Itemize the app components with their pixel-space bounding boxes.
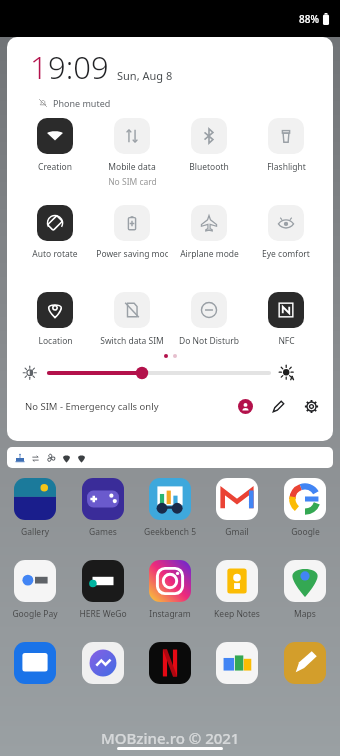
staticText: 88%: [299, 12, 319, 26]
staticText: Eye comfort: [262, 248, 310, 260]
button[interactable]: Power saving mode: [96, 205, 168, 260]
button[interactable]: [205, 642, 269, 684]
button[interactable]: No SIM - Emergency calls only: [25, 400, 159, 413]
button[interactable]: Mobile data: [96, 118, 168, 188]
staticText: Airplane mode: [180, 248, 239, 260]
button[interactable]: Geekbench 5: [138, 478, 202, 538]
button[interactable]: Do Not Disturb: [173, 292, 245, 347]
button[interactable]: Location: [19, 292, 91, 347]
staticText: Power saving mode: [96, 248, 168, 260]
staticText: Geekbench 5: [144, 526, 196, 538]
staticText: Auto rotate: [32, 248, 78, 260]
button[interactable]: [273, 642, 337, 684]
button[interactable]: Edit: [271, 399, 286, 414]
button[interactable]: [47, 365, 271, 381]
staticText: No SIM card: [108, 176, 157, 188]
staticText: MOBzine.ro © 2021: [101, 728, 240, 748]
button[interactable]: HERE WeGo: [71, 560, 135, 620]
button[interactable]: Phone muted: [30, 94, 119, 112]
staticText: Sun, Aug 8: [117, 68, 173, 83]
button[interactable]: Instagram: [138, 560, 202, 620]
staticText: Bluetooth: [189, 161, 229, 173]
button[interactable]: Gmail: [205, 478, 269, 538]
button[interactable]: [138, 642, 202, 684]
staticText: Do Not Disturb: [179, 335, 239, 347]
button[interactable]: Settings: [304, 399, 319, 414]
staticText: NFC: [278, 335, 295, 347]
staticText: Gallery: [21, 526, 49, 538]
staticText: Mobile data: [108, 161, 156, 173]
button[interactable]: Airplane mode: [173, 205, 245, 260]
button[interactable]: Bluetooth: [173, 118, 245, 173]
button[interactable]: Low brightness: [23, 366, 38, 381]
button[interactable]: Keep Notes: [205, 560, 269, 620]
staticText: Instagram: [149, 608, 191, 620]
staticText: Google Pay: [12, 608, 58, 620]
staticText: 9:09: [48, 46, 109, 88]
button[interactable]: NFC: [250, 292, 322, 347]
button[interactable]: Google: [273, 478, 337, 538]
button[interactable]: Creation: [19, 118, 91, 173]
staticText: 1: [30, 46, 48, 88]
staticText: Creation: [38, 161, 72, 173]
button[interactable]: Eye comfort: [250, 205, 322, 260]
staticText: Location: [38, 335, 73, 347]
button[interactable]: Google Pay: [3, 560, 67, 620]
staticText: Maps: [294, 608, 316, 620]
button[interactable]: Auto brightness: [279, 365, 295, 381]
staticText: Switch data SIM: [100, 335, 164, 347]
button[interactable]: Switch data SIM: [96, 292, 168, 347]
button[interactable]: [71, 642, 135, 684]
button[interactable]: Maps: [273, 560, 337, 620]
button[interactable]: Gallery: [3, 478, 67, 538]
staticText: Gmail: [225, 526, 249, 538]
staticText: Games: [89, 526, 117, 538]
staticText: Phone muted: [53, 97, 111, 109]
staticText: Keep Notes: [214, 608, 260, 620]
button[interactable]: [3, 642, 67, 684]
button[interactable]: Flashlight: [250, 118, 322, 173]
staticText: Google: [291, 526, 320, 538]
button[interactable]: User account: [238, 399, 253, 414]
button[interactable]: Games: [71, 478, 135, 538]
button[interactable]: Auto rotate: [19, 205, 91, 260]
staticText: Flashlight: [267, 161, 306, 173]
staticText: HERE WeGo: [79, 608, 127, 620]
